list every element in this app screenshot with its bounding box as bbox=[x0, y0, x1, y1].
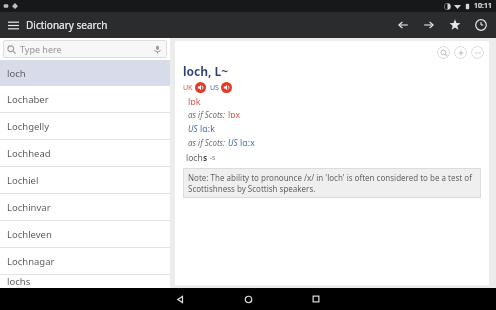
button[interactable]: loch bbox=[0, 60, 170, 86]
button[interactable]: Type here bbox=[3, 40, 167, 58]
staticText: Lochiel bbox=[7, 174, 39, 187]
button[interactable]: Back bbox=[170, 289, 190, 309]
staticText: Note: The ability to pronounce /x/ in 'l… bbox=[188, 172, 476, 194]
staticText: Dictionary search bbox=[26, 18, 108, 32]
staticText: -s bbox=[208, 153, 216, 163]
button[interactable]: Play US pronunciation bbox=[221, 82, 232, 93]
staticText: Type here bbox=[20, 43, 62, 55]
button[interactable]: Play UK pronunciation bbox=[195, 82, 206, 93]
staticText: s bbox=[203, 152, 208, 164]
button[interactable]: Zoom bbox=[437, 46, 450, 59]
staticText: loch bbox=[7, 67, 26, 80]
button[interactable]: Back bbox=[390, 12, 416, 38]
staticText: Lochhead bbox=[7, 147, 51, 160]
button[interactable]: Recent apps bbox=[306, 289, 326, 309]
button[interactable]: Lochhead bbox=[0, 140, 170, 166]
button[interactable]: Lochinvar bbox=[0, 194, 170, 220]
staticText: lɒx bbox=[228, 109, 240, 121]
staticText: Lochnagar bbox=[7, 255, 55, 268]
button[interactable]: Voice search bbox=[152, 44, 163, 55]
button[interactable]: lochs bbox=[0, 275, 170, 288]
staticText: 10:11 bbox=[474, 1, 492, 11]
button[interactable]: Add to favourites bbox=[454, 46, 467, 59]
staticText: lɑːk bbox=[200, 123, 215, 135]
staticText: lɑːx bbox=[240, 137, 255, 149]
staticText: as if Scots: bbox=[188, 137, 228, 148]
button[interactable]: Lochiel bbox=[0, 167, 170, 193]
button[interactable]: Lochnagar bbox=[0, 248, 170, 274]
staticText: US bbox=[188, 123, 200, 134]
button[interactable]: Lochaber bbox=[0, 86, 170, 112]
button[interactable]: Favourites bbox=[442, 12, 468, 38]
staticText: lochs bbox=[7, 275, 31, 288]
button[interactable]: Lochleven bbox=[0, 221, 170, 247]
button[interactable]: History bbox=[468, 12, 494, 38]
staticText: US bbox=[210, 83, 219, 93]
button[interactable]: Lochgelly bbox=[0, 113, 170, 139]
button[interactable]: Open navigation drawer bbox=[0, 12, 26, 38]
button[interactable]: Home bbox=[238, 289, 258, 309]
button[interactable]: Forward bbox=[416, 12, 442, 38]
staticText: US bbox=[228, 137, 240, 148]
staticText: as if Scots: bbox=[188, 109, 228, 120]
staticText: Lochgelly bbox=[7, 120, 50, 133]
staticText: lɒk bbox=[188, 95, 201, 107]
staticText: loch, L~ bbox=[183, 63, 229, 79]
staticText: Lochleven bbox=[7, 228, 52, 241]
button[interactable]: More options bbox=[471, 46, 484, 59]
staticText: loch bbox=[186, 152, 203, 164]
staticText: Lochinvar bbox=[7, 201, 51, 214]
staticText: Lochaber bbox=[7, 93, 49, 106]
staticText: UK bbox=[183, 83, 193, 93]
